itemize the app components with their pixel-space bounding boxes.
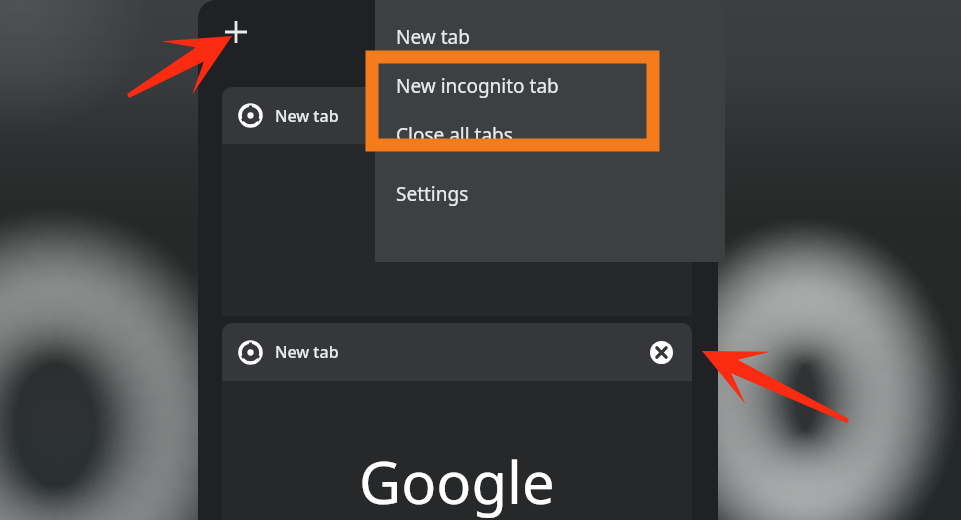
button[interactable]: New tab — [375, 0, 725, 50]
button[interactable]: New tab — [222, 87, 692, 316]
staticText: Settings — [396, 181, 469, 207]
button[interactable]: New incognito tab — [375, 50, 725, 99]
staticText: New incognito tab — [396, 73, 559, 99]
button[interactable]: Settings — [375, 148, 725, 207]
staticText: Google — [379, 199, 535, 262]
button[interactable]: Close all tabs — [375, 99, 725, 148]
button[interactable]: New tab — [222, 323, 692, 520]
button[interactable]: New tab — [216, 12, 256, 52]
staticText: Close all tabs — [396, 122, 513, 148]
staticText: New tab — [275, 105, 339, 127]
staticText: New tab — [396, 24, 470, 50]
staticText: Google — [359, 442, 555, 520]
button[interactable]: Close tab — [646, 337, 676, 367]
staticText: New tab — [275, 341, 339, 363]
